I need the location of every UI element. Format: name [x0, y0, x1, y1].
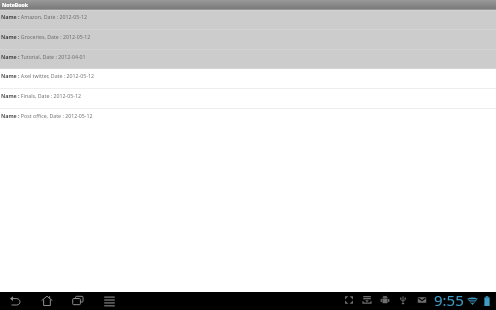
- other: USB connected: [398, 295, 408, 305]
- staticText: Name : Finals, Date : 2012-05-12: [1, 92, 81, 99]
- other: Fullscreen: [344, 295, 354, 305]
- button[interactable]: NoteBook: [0, 0, 496, 10]
- button[interactable]: Name : Groceries, Date : 2012-05-12: [0, 30, 496, 50]
- staticText: Name : Tutorial, Date : 2012-04-01: [1, 53, 86, 60]
- staticText: Name : Groceries, Date : 2012-05-12: [1, 33, 91, 40]
- other: USB debugging: [380, 295, 390, 305]
- other: Battery: [484, 296, 490, 306]
- staticText: NoteBook: [2, 1, 28, 8]
- staticText: Name : Post office, Date : 2012-05-12: [1, 112, 93, 119]
- button[interactable]: Back: [6, 292, 25, 310]
- staticText: Name : Amazon, Date : 2012-05-12: [1, 13, 87, 20]
- other: Download: [362, 295, 372, 305]
- button[interactable]: Home: [37, 292, 57, 310]
- other: Wi-Fi: [467, 297, 478, 305]
- staticText: Name : Axel twitter, Date : 2012-05-12: [1, 72, 94, 79]
- button[interactable]: Name : Axel twitter, Date : 2012-05-12: [0, 69, 496, 89]
- button[interactable]: Recent apps: [68, 292, 88, 310]
- button[interactable]: Name : Amazon, Date : 2012-05-12: [0, 10, 496, 30]
- button[interactable]: Name : Post office, Date : 2012-05-12: [0, 109, 496, 129]
- button[interactable]: Name : Finals, Date : 2012-05-12: [0, 89, 496, 109]
- button[interactable]: Menu: [100, 292, 119, 310]
- staticText: 9:55: [434, 290, 464, 308]
- button[interactable]: Name : Tutorial, Date : 2012-04-01: [0, 50, 496, 69]
- other: Email: [417, 295, 427, 305]
